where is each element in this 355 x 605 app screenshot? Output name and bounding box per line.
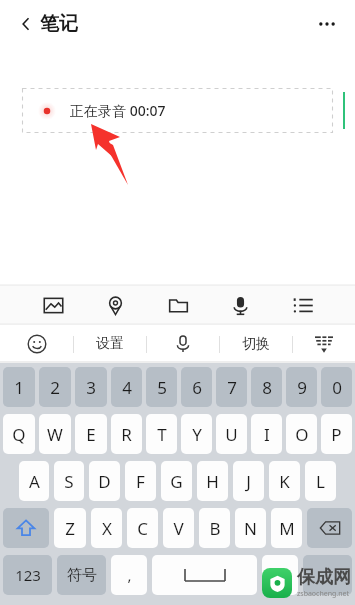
staticText: 2 — [50, 376, 60, 399]
staticText: 9 — [297, 376, 307, 399]
staticText: G — [170, 470, 183, 493]
button[interactable]: R — [111, 414, 142, 454]
button[interactable]: C — [127, 508, 158, 548]
staticText: U — [225, 423, 238, 446]
button[interactable]: T — [146, 414, 177, 454]
button[interactable]: Attach file — [158, 285, 198, 325]
button[interactable]: Voice recording — [220, 285, 260, 325]
staticText: 4 — [122, 376, 132, 399]
button[interactable]: Insert image — [33, 285, 73, 325]
staticText: D — [98, 470, 111, 493]
button[interactable]: More options — [307, 4, 347, 44]
staticText: V — [173, 517, 184, 540]
staticText: M — [279, 517, 295, 540]
button[interactable]: O — [286, 414, 317, 454]
staticText: S — [64, 470, 74, 493]
button[interactable]: P — [321, 414, 352, 454]
staticText: N — [244, 517, 257, 540]
staticText: L — [316, 470, 325, 493]
staticText: 5 — [157, 376, 167, 399]
staticText: B — [209, 517, 221, 540]
button[interactable]: Shift — [3, 508, 49, 548]
button[interactable]: , — [111, 555, 147, 595]
staticText: 正在录音 00:07 — [70, 101, 166, 120]
button[interactable]: G — [161, 461, 192, 501]
staticText: Q — [12, 423, 26, 446]
button[interactable]: S — [54, 461, 84, 501]
button[interactable]: H — [197, 461, 228, 501]
staticText: , — [127, 565, 132, 585]
button[interactable]: Voice input — [147, 325, 219, 363]
button[interactable]: Add location — [95, 285, 135, 325]
staticText: I — [264, 423, 270, 446]
button[interactable]: 5 — [146, 367, 177, 407]
staticText: 切换 — [242, 335, 270, 353]
staticText: K — [279, 470, 290, 493]
staticText: F — [136, 470, 145, 493]
staticText: W — [47, 423, 63, 446]
button[interactable]: Q — [3, 414, 35, 454]
button[interactable]: Checklist — [283, 285, 323, 325]
button[interactable]: M — [271, 508, 302, 548]
button[interactable]: 4 — [111, 367, 142, 407]
button[interactable]: 8 — [251, 367, 282, 407]
staticText: T — [157, 423, 167, 446]
button[interactable]: 1 — [3, 367, 35, 407]
button[interactable]: Back — [6, 4, 46, 44]
staticText: 符号 — [67, 566, 97, 585]
button[interactable]: 0 — [321, 367, 352, 407]
staticText: 1 — [14, 376, 24, 399]
button[interactable]: 切换 — [220, 325, 292, 363]
button[interactable]: Emoji — [0, 325, 73, 363]
button[interactable]: 9 — [286, 367, 317, 407]
button[interactable]: W — [39, 414, 71, 454]
button[interactable]: 符号 — [57, 555, 106, 595]
staticText: X — [102, 517, 112, 540]
button[interactable]: B — [199, 508, 230, 548]
button[interactable]: K — [269, 461, 300, 501]
button[interactable]: 123 — [3, 555, 52, 595]
button[interactable]: Y — [181, 414, 212, 454]
button[interactable]: X — [91, 508, 122, 548]
button[interactable]: V — [163, 508, 194, 548]
button[interactable]: F — [125, 461, 156, 501]
staticText: 8 — [262, 376, 272, 399]
staticText: P — [331, 423, 342, 446]
button[interactable]: E — [75, 414, 107, 454]
button[interactable]: Space — [152, 555, 257, 595]
staticText: zsbaocheng.net — [297, 589, 350, 599]
button[interactable]: 。 — [262, 555, 298, 595]
button[interactable]: 设置 — [74, 325, 146, 363]
button[interactable]: N — [235, 508, 266, 548]
button[interactable]: 7 — [216, 367, 247, 407]
staticText: O — [295, 423, 309, 446]
button[interactable]: J — [233, 461, 264, 501]
button[interactable]: Z — [54, 508, 86, 548]
button[interactable]: A — [19, 461, 49, 501]
button[interactable]: U — [216, 414, 247, 454]
button[interactable]: 2 — [39, 367, 71, 407]
button[interactable]: D — [89, 461, 120, 501]
button[interactable] — [303, 555, 352, 595]
staticText: 笔记 — [40, 12, 78, 36]
staticText: 设置 — [96, 335, 124, 353]
staticText: H — [206, 470, 219, 493]
staticText: Y — [192, 423, 202, 446]
staticText: 。 — [273, 566, 288, 585]
button[interactable]: I — [251, 414, 282, 454]
button[interactable]: Backspace — [307, 508, 352, 548]
staticText: 6 — [192, 376, 202, 399]
staticText: 0 — [332, 376, 342, 399]
staticText: J — [246, 470, 251, 493]
button[interactable]: L — [305, 461, 336, 501]
staticText: Z — [65, 517, 75, 540]
button[interactable]: Hide keyboard — [293, 325, 355, 363]
staticText: R — [121, 423, 132, 446]
staticText: E — [86, 423, 96, 446]
button[interactable]: 6 — [181, 367, 212, 407]
staticText: 3 — [86, 376, 96, 399]
button[interactable]: 正在录音 00:07 — [22, 88, 333, 133]
staticText: 123 — [15, 565, 41, 585]
button[interactable]: 3 — [75, 367, 107, 407]
staticText: A — [29, 470, 40, 493]
